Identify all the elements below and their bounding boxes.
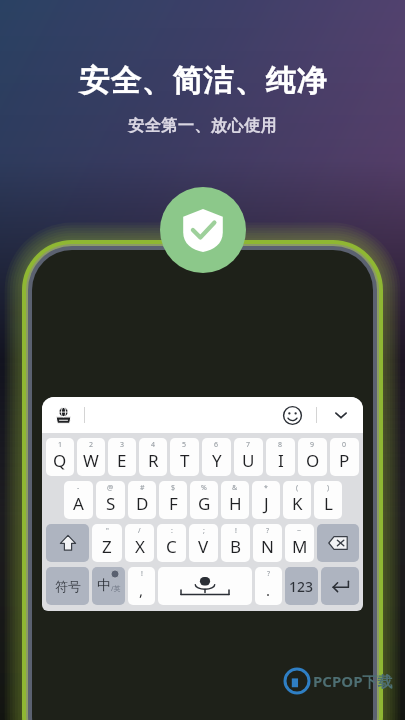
staticText: P — [339, 449, 350, 472]
staticText: N — [261, 535, 274, 558]
staticText: G — [198, 492, 211, 515]
staticText: 安全第一、放心使用 — [128, 116, 277, 136]
staticText: W — [83, 449, 99, 472]
button[interactable]: 5 — [170, 438, 199, 476]
staticText: 0 — [342, 440, 347, 450]
staticText: 2 — [89, 440, 94, 450]
staticText: D — [136, 492, 149, 515]
staticText: " — [106, 526, 109, 536]
button[interactable]: % — [190, 481, 218, 519]
button[interactable]: ) — [314, 481, 342, 519]
staticText: ) — [327, 483, 330, 493]
staticText: 9 — [310, 440, 315, 450]
staticText: 6 — [214, 440, 219, 450]
staticText: F — [169, 492, 178, 515]
button[interactable]: 空格 — [158, 567, 252, 605]
staticText: 4 — [151, 440, 156, 450]
button[interactable]: 收起键盘 — [329, 403, 353, 427]
button[interactable]: 3 — [108, 438, 136, 476]
staticText: ! — [141, 569, 143, 579]
button[interactable]: ! — [128, 567, 155, 605]
button[interactable]: 符号 — [46, 567, 89, 605]
staticText: 中 — [97, 577, 111, 595]
button[interactable]: 4 — [139, 438, 167, 476]
staticText: , — [139, 580, 144, 600]
staticText: @ — [107, 483, 114, 493]
staticText: 5 — [182, 440, 187, 450]
button[interactable]: ! — [221, 524, 250, 562]
staticText: 123 — [289, 577, 314, 596]
button[interactable]: 1 — [46, 438, 74, 476]
staticText: I — [278, 449, 284, 472]
button[interactable]: 回车 — [321, 567, 359, 605]
staticText: K — [292, 492, 303, 515]
staticText: 安全、简洁、纯净 — [79, 62, 327, 100]
staticText: % — [201, 483, 207, 493]
staticText: 3 — [120, 440, 125, 450]
staticText: U — [242, 449, 255, 472]
button[interactable]: ( — [283, 481, 311, 519]
staticText: * — [264, 483, 268, 493]
staticText: L — [324, 492, 333, 515]
button[interactable]: / — [125, 524, 154, 562]
staticText: ~ — [297, 526, 302, 536]
staticText: & — [232, 483, 238, 493]
button[interactable]: ~ — [285, 524, 314, 562]
staticText: C — [166, 535, 177, 558]
button[interactable]: 中 — [92, 567, 125, 605]
staticText: 7 — [246, 440, 251, 450]
button[interactable]: 安全防护 — [160, 187, 246, 273]
button[interactable]: 表情 — [280, 403, 304, 427]
staticText: M — [292, 535, 308, 558]
button[interactable]: : — [157, 524, 186, 562]
button[interactable]: 6 — [202, 438, 231, 476]
staticText: . — [266, 580, 271, 600]
button[interactable]: " — [92, 524, 122, 562]
staticText: 8 — [278, 440, 283, 450]
staticText: ( — [296, 483, 299, 493]
button[interactable]: * — [252, 481, 280, 519]
button[interactable]: 0 — [330, 438, 359, 476]
button[interactable]: 退格 — [317, 524, 359, 562]
staticText: 1 — [58, 440, 63, 450]
button[interactable]: - — [64, 481, 93, 519]
button[interactable]: 7 — [234, 438, 263, 476]
button[interactable]: # — [128, 481, 156, 519]
button[interactable]: ? — [255, 567, 282, 605]
staticText: # — [140, 483, 145, 493]
staticText: Y — [212, 449, 222, 472]
button[interactable]: & — [221, 481, 249, 519]
staticText: $ — [171, 483, 176, 493]
staticText: Q — [53, 449, 67, 472]
staticText: H — [229, 492, 242, 515]
staticText: V — [198, 535, 209, 558]
staticText: ? — [266, 526, 270, 536]
button[interactable]: $ — [159, 481, 187, 519]
button[interactable]: ? — [253, 524, 282, 562]
button[interactable]: Shift — [46, 524, 89, 562]
button[interactable]: 123 — [285, 567, 318, 605]
staticText: O — [306, 449, 320, 472]
button[interactable]: 8 — [266, 438, 295, 476]
button[interactable]: 9 — [298, 438, 327, 476]
staticText: R — [148, 449, 159, 472]
button[interactable]: ; — [189, 524, 218, 562]
staticText: ; — [203, 526, 205, 536]
staticText: E — [117, 449, 127, 472]
staticText: T — [180, 449, 190, 472]
staticText: B — [230, 535, 242, 558]
staticText: S — [106, 492, 116, 515]
staticText: /英 — [111, 584, 121, 594]
staticText: J — [264, 492, 269, 515]
staticText: PCPOP下载 — [313, 671, 393, 691]
staticText: X — [135, 535, 145, 558]
staticText: - — [77, 483, 80, 493]
button[interactable]: @ — [96, 481, 125, 519]
button[interactable]: 2 — [77, 438, 105, 476]
staticText: 符号 — [55, 578, 81, 594]
staticText: / — [138, 526, 141, 536]
button[interactable]: 输入法 — [52, 404, 74, 426]
staticText: ? — [267, 569, 271, 579]
staticText: ! — [235, 526, 237, 536]
staticText: A — [73, 492, 84, 515]
